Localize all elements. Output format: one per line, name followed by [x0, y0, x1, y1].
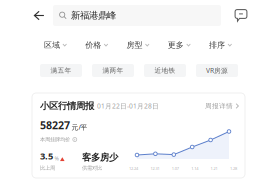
staticText: 01月22日-01月28日	[97, 102, 159, 110]
staticText: 12.24	[129, 166, 138, 171]
staticText: VR房源	[206, 66, 228, 75]
staticText: 元/平	[71, 123, 87, 132]
staticText: 客多房少	[82, 152, 118, 163]
staticText: 满两年	[102, 66, 123, 75]
button[interactable]: Messages	[232, 6, 250, 24]
staticText: 价格	[85, 40, 101, 50]
staticText: 更多	[168, 40, 184, 50]
button[interactable]: 价格	[82, 38, 111, 52]
staticText: 1.21	[211, 166, 218, 171]
button[interactable]: VR房源	[196, 64, 238, 77]
button[interactable]: 房型	[123, 38, 152, 52]
button[interactable]: 更多	[165, 38, 194, 52]
staticText: 3.5	[40, 150, 53, 162]
staticText: 1.14	[191, 166, 198, 171]
staticText: 新福港鼎峰	[71, 10, 116, 21]
button[interactable]: 近地铁	[144, 64, 186, 77]
button[interactable]: 满两年	[92, 64, 134, 77]
staticText: 满五年	[50, 66, 71, 75]
staticText: 1.07	[172, 166, 179, 171]
button[interactable]: Back	[29, 5, 49, 25]
button[interactable]: 排序	[206, 38, 235, 52]
staticText: 1.28	[230, 166, 237, 171]
button[interactable]: 满五年	[40, 64, 82, 77]
staticText: 12.31	[150, 166, 159, 171]
staticText: 比上周	[40, 165, 55, 171]
staticText: 供需对比	[82, 165, 102, 171]
staticText: 小区行情周报	[40, 100, 94, 112]
staticText: %	[54, 155, 58, 162]
button[interactable]: 区域	[41, 38, 70, 52]
button[interactable]: 新福港鼎峰	[53, 5, 221, 26]
button[interactable]: 小区行情周报	[32, 93, 245, 178]
staticText: 排序	[209, 40, 225, 50]
staticText: 58227	[40, 118, 70, 132]
staticText: 本周挂牌均价	[40, 136, 70, 143]
staticText: 房型	[126, 40, 142, 50]
staticText: 周报详情	[205, 102, 233, 110]
staticText: 区域	[44, 40, 60, 50]
staticText: 近地铁	[154, 66, 175, 75]
